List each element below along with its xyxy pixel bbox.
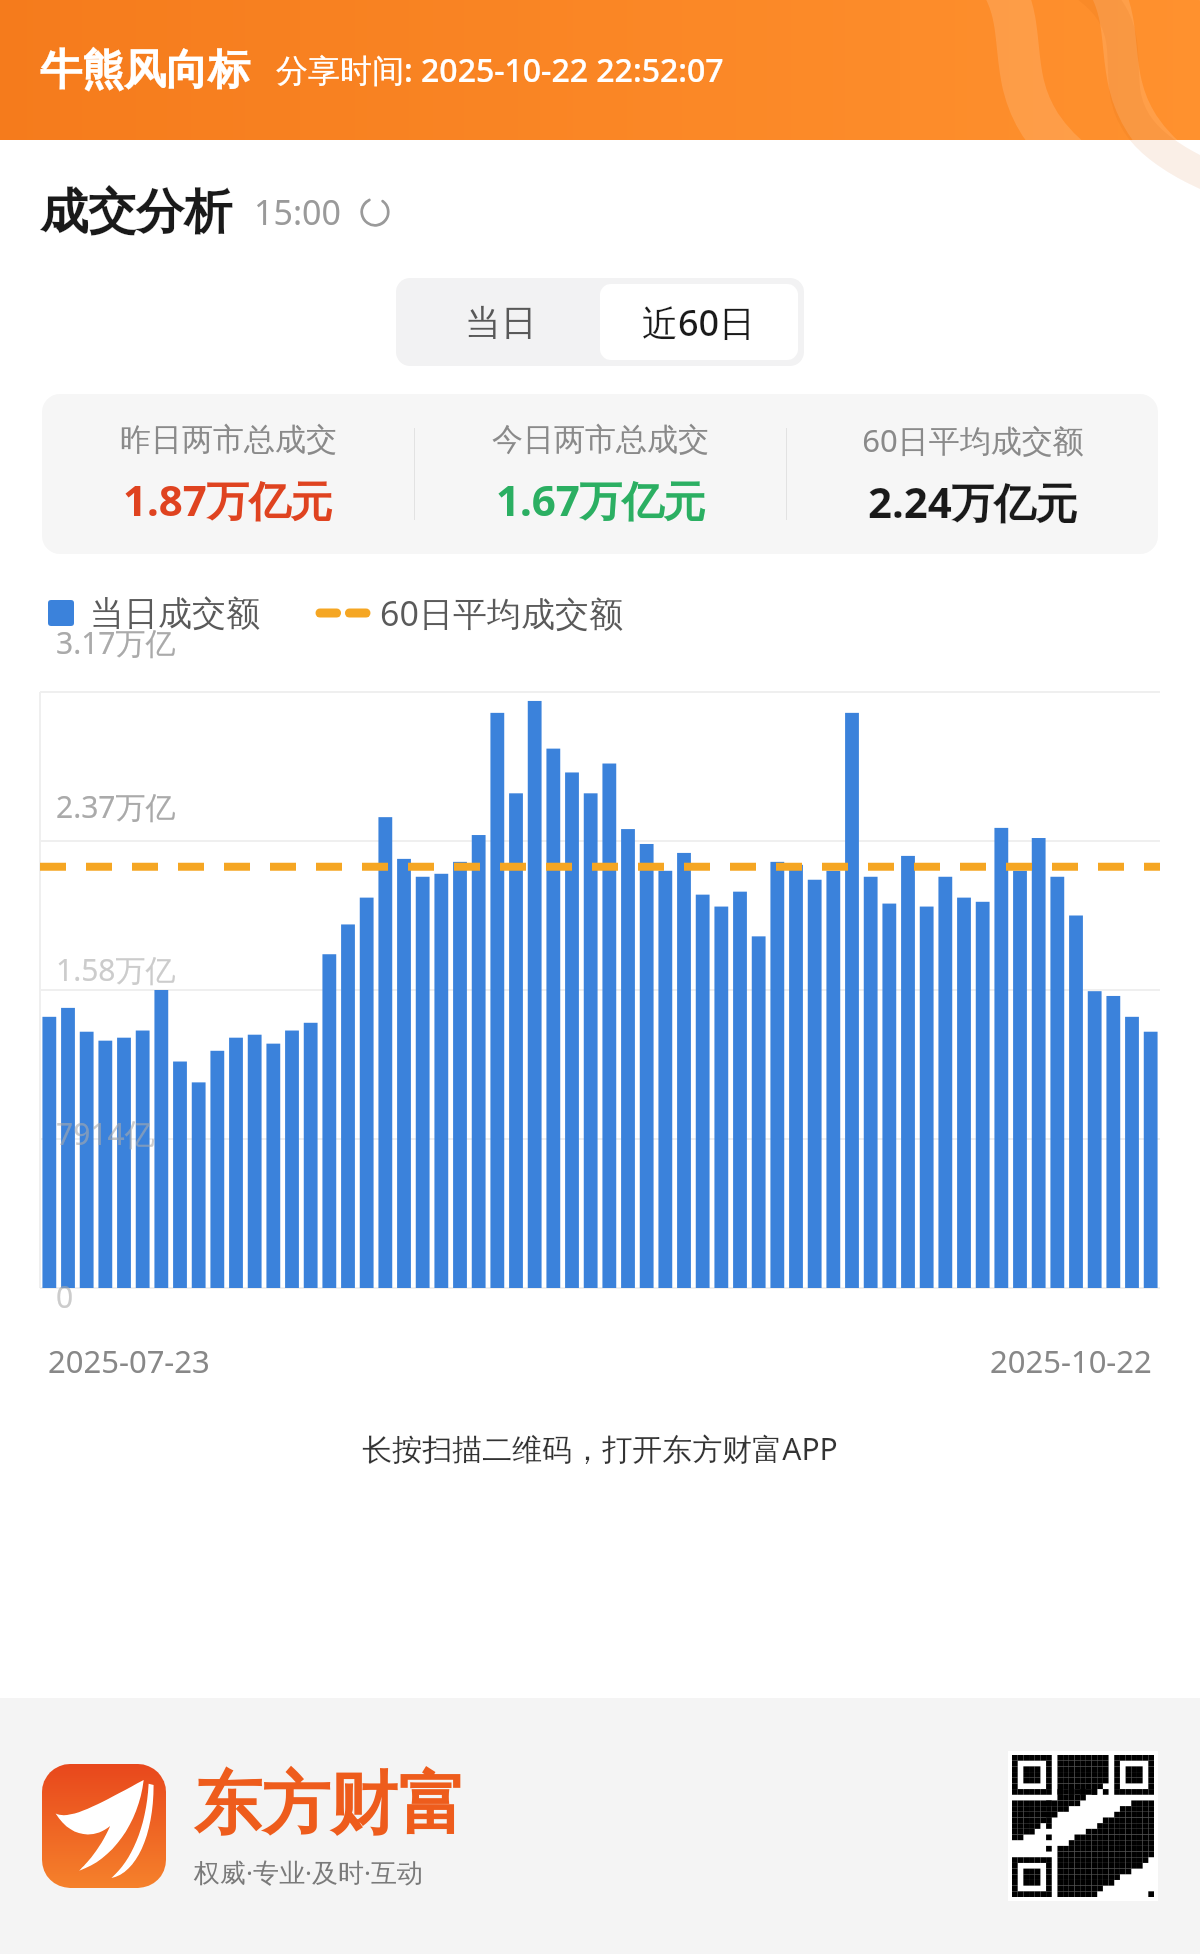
staticText: 1.87万亿元 [123,471,333,528]
button[interactable]: 今日两市总成交 [415,420,786,528]
staticText: 分享时间: 2025-10-22 22:52:07 [276,48,724,92]
staticText: 成交分析 [40,182,232,242]
staticText: 1.58万亿 [56,949,176,990]
staticText: 近60日 [642,298,756,347]
staticText: 0 [56,1276,74,1317]
staticText: 牛熊风向标 [40,44,250,97]
button[interactable]: 近60日 [600,284,798,360]
staticText: 60日平均成交额 [380,590,623,636]
staticText: 东方财富 [194,1762,466,1848]
staticText: 长按扫描二维码，打开东方财富APP [0,1428,1200,1469]
staticText: 2025-07-23 [48,1340,210,1382]
button[interactable]: Refresh [355,192,395,232]
staticText: 今日两市总成交 [492,420,709,459]
staticText: 1.67万亿元 [496,471,706,528]
staticText: 3.17万亿 [56,622,176,663]
staticText: 当日 [465,300,537,345]
staticText: 2.37万亿 [56,786,176,827]
staticText: 60日平均成交额 [862,419,1084,461]
staticText: 当日成交额 [90,592,260,635]
staticText: 7914亿 [56,1113,155,1154]
staticText: 2025-10-22 [990,1340,1152,1382]
button[interactable]: 昨日两市总成交 [42,420,414,528]
staticText: 昨日两市总成交 [120,420,337,459]
button[interactable]: 当日 [402,284,600,360]
button[interactable]: QR code [1008,1751,1158,1901]
button[interactable]: 东方财富 [42,1764,166,1888]
staticText: 权威·专业·及时·互动 [194,1854,423,1890]
button[interactable]: 60日平均成交额 [787,419,1158,530]
staticText: 2.24万亿元 [868,473,1078,530]
staticText: 15:00 [254,189,341,235]
